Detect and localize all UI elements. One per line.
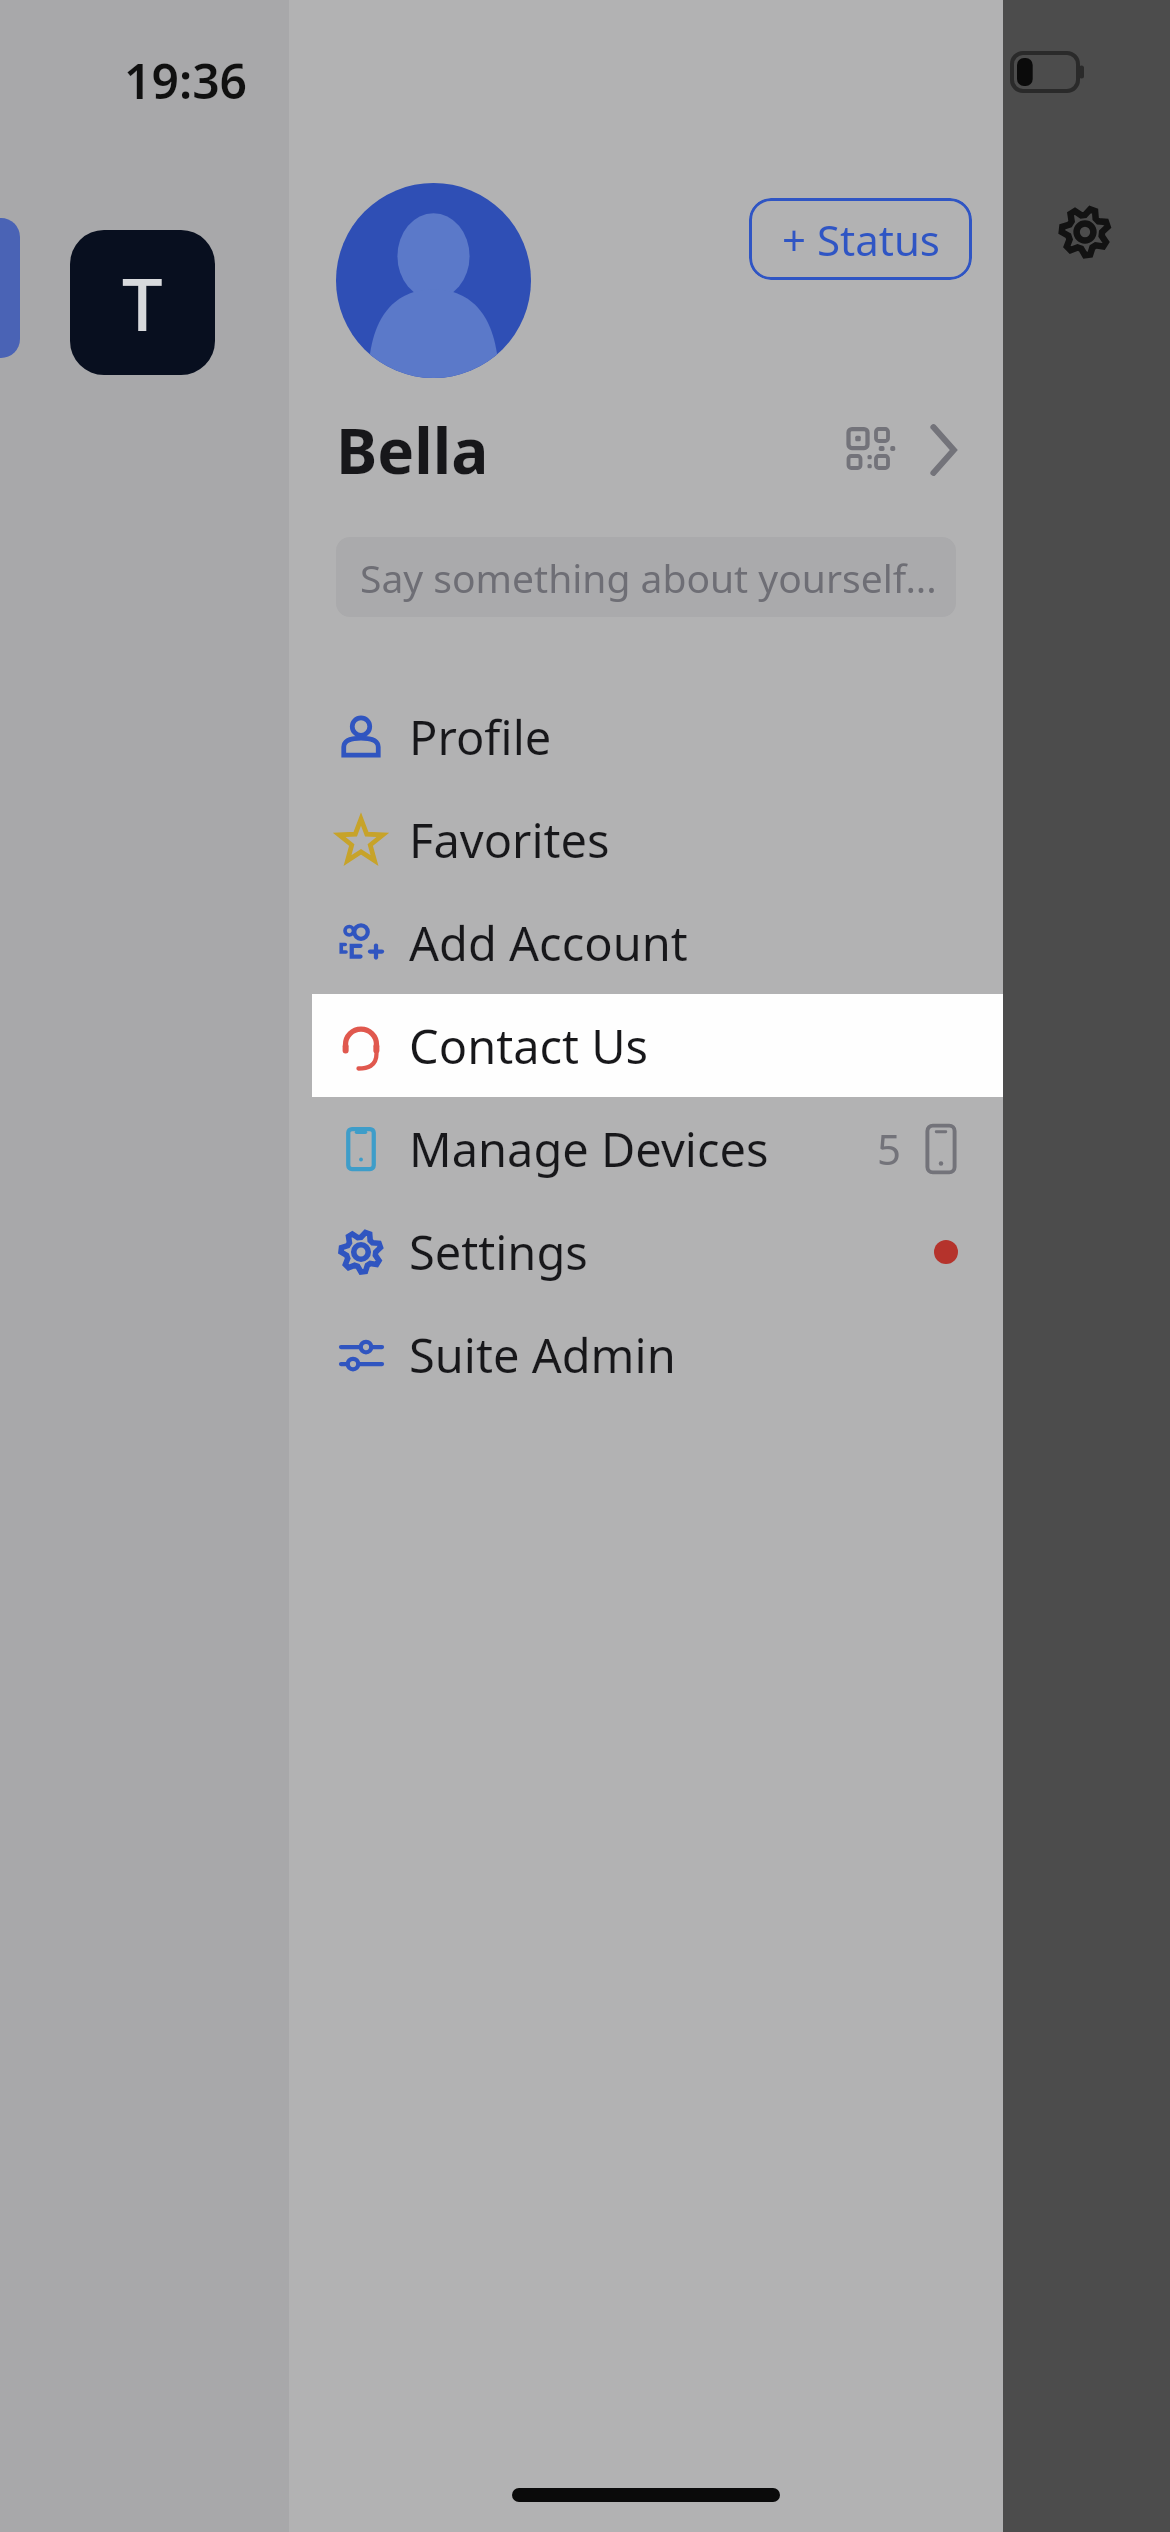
staticText: Manage Devices [409, 1117, 769, 1181]
button[interactable]: Contact Us [312, 994, 1003, 1097]
button[interactable]: Settings [289, 1200, 1003, 1303]
staticText: Settings [409, 1220, 588, 1284]
staticText: Add Account [409, 911, 688, 975]
staticText: T [122, 254, 163, 352]
staticText: 5 [877, 1120, 902, 1177]
button[interactable]: Say something about yourself... [336, 537, 956, 617]
button[interactable]: Profile [289, 685, 1003, 788]
button[interactable]: Settings [1046, 193, 1124, 271]
staticText: Say something about yourself... [360, 551, 937, 604]
staticText: Profile [409, 705, 552, 769]
staticText: Bella [336, 408, 489, 492]
staticText: Favorites [409, 808, 610, 872]
button[interactable]: Manage Devices [289, 1097, 1003, 1200]
staticText: 19:36 [124, 48, 248, 113]
staticText: Suite Admin [409, 1323, 676, 1387]
button[interactable]: Profile photo [336, 183, 531, 378]
button[interactable]: Suite Admin [289, 1303, 1003, 1406]
button[interactable]: Favorites [289, 788, 1003, 891]
staticText: + Status [782, 211, 940, 268]
staticText: Contact Us [409, 1014, 649, 1078]
button[interactable]: + Status [749, 198, 972, 280]
other: QR code [846, 425, 896, 475]
button[interactable]: Bella [289, 405, 1003, 495]
button[interactable]: Add Account [289, 891, 1003, 994]
